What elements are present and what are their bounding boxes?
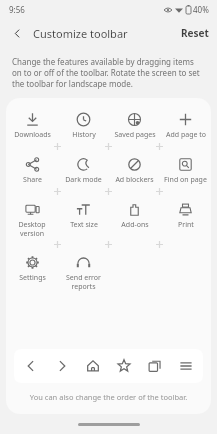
button[interactable]: Bookmarks — [110, 352, 138, 380]
staticText: You can also change the order of the too… — [6, 392, 211, 402]
staticText: Settings — [19, 273, 46, 283]
staticText: Add page to — [166, 130, 206, 140]
button[interactable]: History — [58, 109, 109, 143]
button[interactable]: Send error reports — [58, 252, 109, 294]
button[interactable]: Text size — [58, 199, 109, 233]
staticText: Dark mode — [65, 175, 102, 185]
button[interactable]: Find on page — [160, 154, 211, 188]
staticText: Saved pages — [114, 130, 156, 140]
button[interactable]: Home — [79, 352, 107, 380]
button[interactable]: Back — [4, 20, 30, 46]
button[interactable]: Ad blockers — [109, 154, 160, 188]
staticText: Downloads — [14, 130, 51, 140]
staticText: Desktop version — [18, 220, 46, 238]
button[interactable]: Reset — [173, 22, 217, 44]
staticText: Reset — [181, 26, 209, 40]
staticText: Customize toolbar — [33, 26, 128, 41]
staticText: Text size — [70, 220, 98, 230]
button[interactable]: Menu — [172, 352, 200, 380]
staticText: Send error reports — [66, 273, 101, 291]
button[interactable]: Tabs — [141, 352, 169, 380]
button[interactable]: Share — [6, 154, 58, 188]
staticText: Print — [178, 220, 194, 230]
staticText: 9:56 — [9, 4, 25, 15]
staticText: Change the features available by draggin… — [12, 56, 205, 89]
button[interactable]: Forward — [48, 352, 76, 380]
button[interactable]: Add page to — [160, 109, 211, 143]
button[interactable]: Saved pages — [109, 109, 160, 143]
button[interactable]: Back — [17, 352, 45, 380]
staticText: 40% — [193, 4, 209, 15]
button[interactable]: Desktop version — [6, 199, 58, 241]
button[interactable]: Settings — [6, 252, 58, 286]
staticText: Ad blockers — [115, 175, 154, 185]
button[interactable]: Print — [160, 199, 211, 233]
staticText: Share — [23, 175, 42, 185]
button[interactable]: Downloads — [6, 109, 58, 143]
staticText: Add-ons — [121, 220, 149, 230]
button[interactable]: Add-ons — [109, 199, 160, 233]
button[interactable]: Dark mode — [58, 154, 109, 188]
staticText: Find on page — [164, 175, 207, 185]
staticText: History — [72, 130, 96, 140]
